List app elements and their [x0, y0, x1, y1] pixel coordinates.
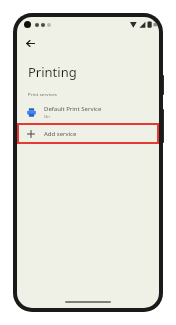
staticText: Print services	[28, 92, 57, 98]
staticText: On	[44, 114, 50, 120]
staticText: Default Print Service	[44, 105, 102, 113]
staticText: Add service	[44, 130, 77, 138]
button[interactable]: Back	[20, 33, 40, 53]
button[interactable]: Default Print Service	[17, 103, 159, 121]
staticText: Printing	[28, 63, 77, 81]
button[interactable]: Add service	[18, 124, 158, 143]
